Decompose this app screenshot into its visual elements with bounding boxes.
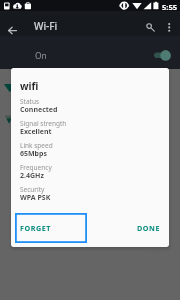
staticText: Security bbox=[20, 185, 45, 194]
staticText: Connected bbox=[20, 105, 58, 115]
staticText: DONE bbox=[137, 223, 161, 233]
staticText: 5:55 bbox=[162, 2, 178, 12]
staticText: Signal strength bbox=[20, 119, 67, 128]
button[interactable]: DONE bbox=[129, 213, 165, 243]
staticText: Frequency bbox=[20, 163, 52, 172]
button[interactable]: On bbox=[0, 36, 180, 69]
staticText: On bbox=[35, 50, 47, 61]
staticText: FORGET bbox=[20, 223, 52, 233]
button[interactable]: Search bbox=[139, 15, 160, 36]
button[interactable]: More options bbox=[159, 15, 180, 36]
staticText: WPA PSK bbox=[20, 193, 51, 203]
staticText: Status bbox=[20, 97, 40, 106]
staticText: 65Mbps bbox=[20, 149, 47, 159]
button[interactable]: FORGET bbox=[15, 213, 87, 243]
staticText: Excellent bbox=[20, 127, 52, 137]
button[interactable]: Back bbox=[1, 15, 23, 37]
staticText: wifi bbox=[20, 79, 39, 93]
staticText: 2.4GHz bbox=[20, 171, 44, 181]
staticText: Link speed bbox=[20, 141, 53, 150]
staticText: Wi-Fi bbox=[34, 19, 58, 33]
